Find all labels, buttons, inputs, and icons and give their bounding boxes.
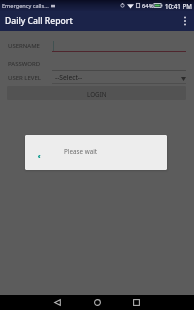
button[interactable]: More options bbox=[176, 11, 194, 31]
staticText: USER LEVEL bbox=[8, 74, 41, 82]
staticText: 10:41 PM bbox=[165, 2, 192, 10]
staticText: USERNAME bbox=[8, 42, 40, 50]
staticText: LOGIN bbox=[87, 90, 107, 99]
staticText: 64% bbox=[142, 2, 154, 10]
staticText: Emergency calls... bbox=[2, 2, 49, 10]
button[interactable]: Recent apps bbox=[133, 299, 140, 306]
staticText: Daily Call Report bbox=[5, 15, 73, 27]
button[interactable]: --Select-- bbox=[55, 71, 180, 83]
staticText: Please wait bbox=[64, 147, 98, 156]
button[interactable]: Home bbox=[94, 299, 101, 306]
button[interactable]: LOGIN bbox=[7, 86, 186, 100]
staticText: --Select-- bbox=[55, 73, 83, 82]
button[interactable]: Back bbox=[54, 299, 61, 306]
staticText: PASSWORD bbox=[8, 60, 41, 68]
